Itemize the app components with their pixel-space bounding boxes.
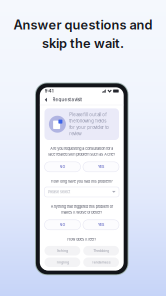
button[interactable]: YES	[83, 220, 119, 230]
staticText: Throbbing	[93, 248, 109, 253]
staticText: the following fields	[69, 118, 106, 124]
button[interactable]: Please select	[44, 187, 119, 197]
staticText: Tingling	[56, 260, 69, 264]
staticText: Itching	[57, 248, 68, 253]
button[interactable]: Back	[44, 97, 49, 102]
button[interactable]: Tenderness	[83, 257, 119, 267]
staticText: Answer questions and	[13, 17, 152, 32]
button[interactable]: NO	[44, 162, 80, 172]
staticText: Tenderness	[92, 260, 111, 264]
staticText: YES	[98, 165, 104, 169]
staticText: Anything that triggered this problem or	[51, 204, 113, 209]
staticText: 9:41	[45, 88, 54, 94]
staticText: How does it feel?	[67, 237, 96, 242]
staticText: skip the wait.	[42, 35, 124, 51]
button[interactable]: Tingling	[44, 257, 80, 267]
staticText: face related skin problem such as Acne?	[48, 152, 115, 157]
staticText: makes it worse or better?	[61, 210, 102, 215]
staticText: for your provider to	[69, 125, 109, 130]
staticText: Are you requesting a consultation for a	[50, 146, 113, 151]
staticText: YES	[98, 223, 104, 227]
button[interactable]: YES	[83, 162, 119, 172]
staticText: Please select	[48, 190, 70, 194]
staticText: Please fill out all of	[69, 112, 107, 117]
staticText: NO	[59, 223, 65, 227]
staticText: How long have you had this problem?	[51, 179, 113, 184]
button[interactable]: Itching	[44, 246, 80, 255]
button[interactable]: Throbbing	[83, 246, 119, 255]
staticText: Request a visit	[52, 97, 81, 102]
button[interactable]: NO	[44, 220, 80, 230]
staticText: review	[69, 131, 81, 136]
staticText: NO	[59, 165, 65, 169]
